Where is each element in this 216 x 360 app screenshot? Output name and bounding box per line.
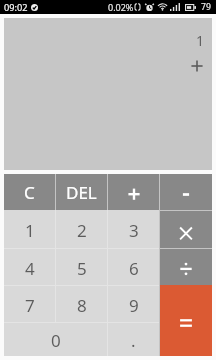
button[interactable]: DEL [56,174,107,210]
staticText: C [24,181,35,204]
staticText: 0 [51,329,61,352]
staticText: 5 [77,257,87,280]
button[interactable]: . [108,323,159,356]
button[interactable]: 9 [108,286,159,322]
staticText: 2 [77,219,87,242]
staticText: 79 [201,1,211,13]
button[interactable]: 7 [4,286,55,322]
staticText: 0.02% [108,1,134,13]
button[interactable]: 5 [56,249,107,285]
button[interactable]: 8 [56,286,107,322]
button[interactable]: C [4,174,55,210]
staticText: 7 [25,294,35,317]
staticText: 8 [77,294,87,317]
staticText: 9 [129,294,139,317]
button[interactable]: Multiply [160,211,212,248]
staticText: DEL [66,181,97,204]
staticText: 4 [25,257,35,280]
button[interactable]: 6 [108,249,159,285]
staticText: 1 [196,31,205,50]
staticText: 09:02 [4,1,28,14]
button[interactable]: Minus [160,174,212,210]
button[interactable]: Equals [160,285,212,356]
button[interactable]: 0 [4,323,107,356]
button[interactable]: 4 [4,249,55,285]
staticText: 6 [129,257,139,280]
button[interactable]: 1 [4,210,55,248]
staticText: 1 [25,219,35,242]
staticText: . [131,329,136,352]
button[interactable]: Divide [160,249,212,285]
staticText: 3 [129,219,139,242]
button[interactable]: 3 [108,210,159,248]
button[interactable]: Plus [108,174,159,210]
button[interactable]: 2 [56,210,107,248]
